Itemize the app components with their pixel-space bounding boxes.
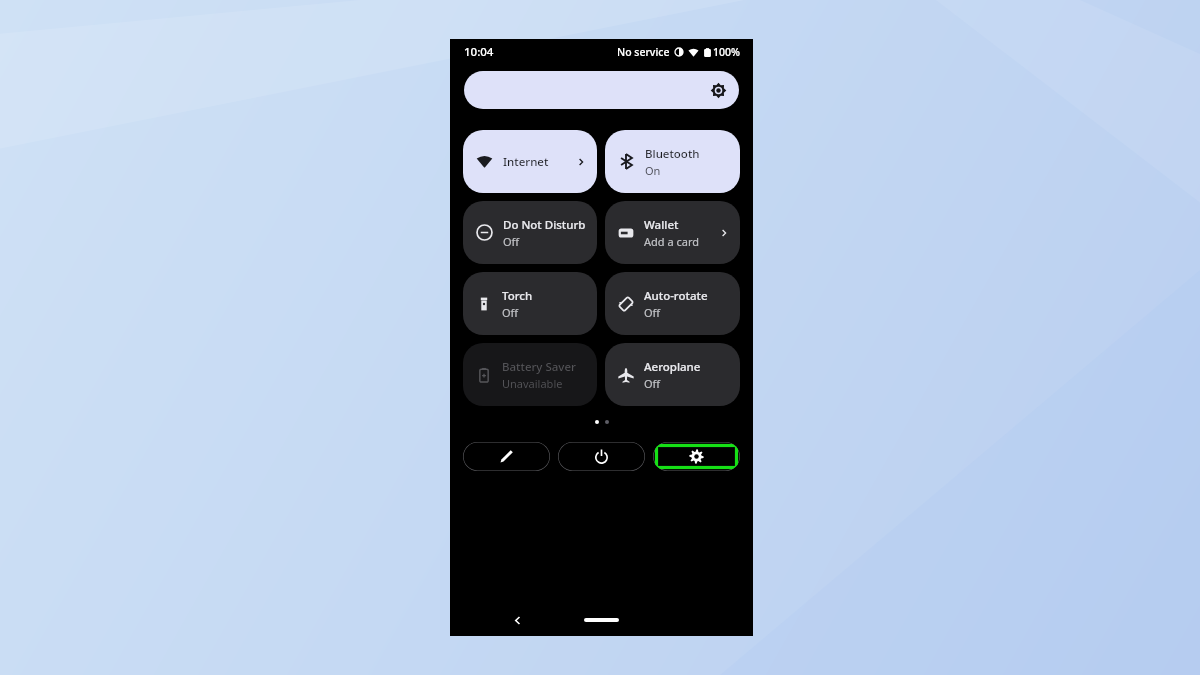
- staticText: Auto-rotate: [644, 288, 708, 304]
- staticText: 10:04: [464, 44, 494, 60]
- staticText: Do Not Disturb: [503, 217, 586, 233]
- staticText: No service: [617, 45, 670, 59]
- staticText: Internet: [503, 154, 549, 170]
- staticText: Off: [502, 305, 519, 320]
- button[interactable]: Battery Saver: [463, 343, 597, 406]
- staticText: 100%: [713, 45, 740, 59]
- staticText: Off: [644, 376, 661, 391]
- button[interactable]: Power: [558, 442, 645, 471]
- button[interactable]: Settings: [653, 442, 740, 471]
- button[interactable]: Bluetooth: [605, 130, 740, 193]
- staticText: Aeroplane mode: [644, 359, 731, 375]
- staticText: Wallet: [644, 217, 679, 233]
- button[interactable]: Edit: [463, 442, 550, 471]
- button[interactable]: Do Not Disturb: [463, 201, 597, 264]
- staticText: Bluetooth: [645, 146, 700, 162]
- staticText: Torch: [502, 288, 533, 304]
- button[interactable]: Internet: [463, 130, 597, 193]
- staticText: On: [645, 163, 661, 178]
- button[interactable]: Aeroplane mode: [605, 343, 740, 406]
- other: Back: [512, 615, 523, 626]
- staticText: Add a card: [644, 234, 699, 249]
- staticText: Battery Saver: [502, 359, 576, 375]
- staticText: Off: [503, 234, 520, 249]
- button[interactable]: Auto-rotate: [605, 272, 740, 335]
- staticText: Off: [644, 305, 661, 320]
- staticText: Unavailable: [502, 376, 563, 391]
- button[interactable]: Brightness: [464, 71, 739, 109]
- button[interactable]: Torch: [463, 272, 597, 335]
- button[interactable]: Wallet: [605, 201, 740, 264]
